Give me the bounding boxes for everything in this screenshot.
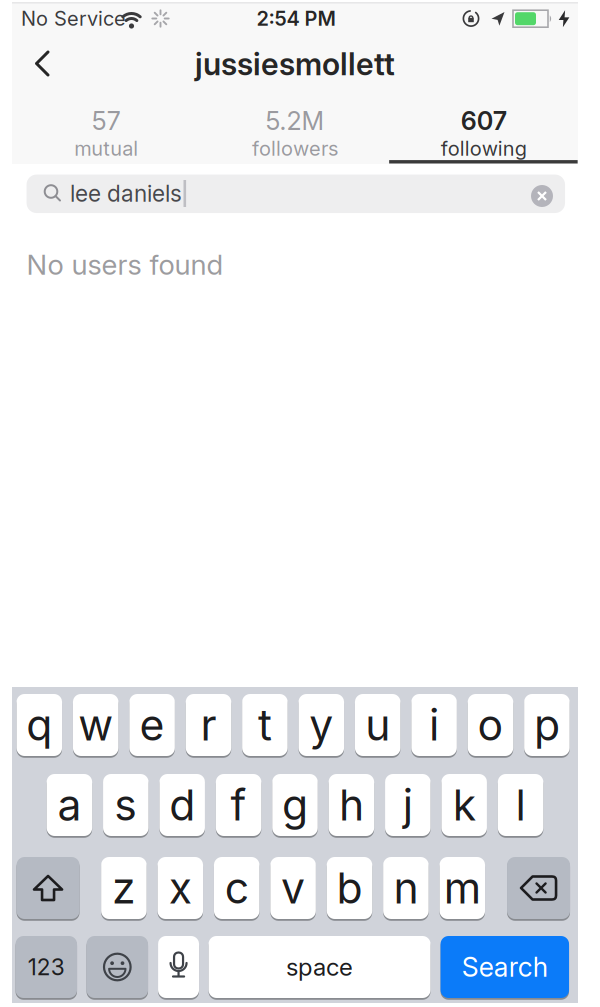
button[interactable]: t [242,694,288,756]
staticText: v [281,863,305,913]
staticText: No Service [21,7,126,30]
button[interactable]: d [159,774,205,836]
staticText: k [453,780,476,830]
staticText: following [441,137,527,160]
button[interactable]: Dictate [158,936,199,998]
staticText: t [258,700,272,750]
staticText: space [286,953,353,981]
staticText: h [339,780,364,830]
staticText: q [26,700,52,750]
staticText: l [516,780,526,830]
button[interactable]: n [383,857,429,919]
staticText: f [231,780,247,830]
staticText: u [365,700,390,750]
button[interactable]: space [209,936,431,998]
button[interactable]: 123 [16,936,77,998]
button[interactable]: r [186,694,231,756]
button[interactable]: s [103,774,148,836]
button[interactable]: 607 [390,102,578,164]
staticText: i [429,700,439,750]
button[interactable]: z [101,857,147,919]
staticText: Search [462,951,548,983]
staticText: 2:54 PM [256,7,335,30]
button[interactable]: k [441,774,487,836]
button[interactable]: i [411,694,457,756]
button[interactable]: l [498,774,543,836]
button[interactable]: c [214,857,259,919]
staticText: a [57,780,81,830]
button[interactable]: f [216,774,261,836]
button[interactable]: w [73,694,118,756]
staticText: j [403,780,413,830]
staticText: p [534,700,560,750]
staticText: b [336,863,362,913]
staticText: d [169,780,195,830]
staticText: c [225,863,249,913]
staticText: w [78,700,113,750]
staticText: jussiesmollett [195,46,395,82]
staticText: s [114,780,137,830]
staticText: mutual [74,137,138,160]
staticText: x [169,863,192,913]
staticText: g [282,780,308,830]
button[interactable]: o [468,694,513,756]
button[interactable]: y [299,694,344,756]
staticText: 5.2M [265,106,324,136]
staticText: 607 [461,106,507,136]
button[interactable]: Emoji [87,936,148,998]
staticText: y [309,700,333,750]
button[interactable]: a [47,774,92,836]
button[interactable]: 5.2M [201,102,389,164]
button[interactable]: Shift [17,857,80,919]
button[interactable]: b [327,857,372,919]
button[interactable]: Search [441,936,569,998]
staticText: followers [252,137,338,160]
button[interactable]: v [270,857,316,919]
staticText: m [444,863,481,913]
staticText: e [140,700,165,750]
staticText: lee daniels [70,180,182,207]
button[interactable]: p [524,694,570,756]
button[interactable]: u [355,694,400,756]
staticText: 57 [92,106,121,136]
button[interactable]: Back [20,41,64,85]
button[interactable]: m [439,857,485,919]
button[interactable]: Clear search text [527,181,557,211]
button[interactable]: j [385,774,430,836]
staticText: z [112,863,136,913]
button[interactable]: 57 [12,102,200,164]
button[interactable]: Delete [507,857,570,919]
staticText: r [200,700,216,750]
staticText: n [393,863,418,913]
button[interactable]: g [272,774,318,836]
button[interactable]: h [329,774,374,836]
staticText: No users found [26,248,223,281]
button[interactable]: e [129,694,175,756]
staticText: 123 [28,954,65,980]
staticText: o [477,700,503,750]
button[interactable]: x [158,857,203,919]
button[interactable]: q [17,694,62,756]
